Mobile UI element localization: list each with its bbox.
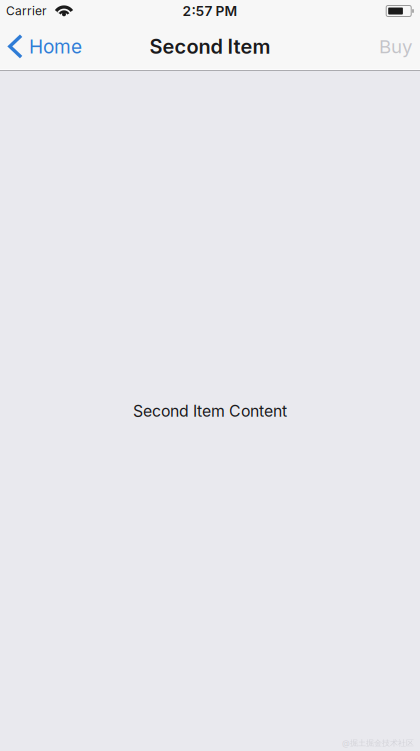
button[interactable]: Home [0,22,92,71]
staticText: Carrier [6,4,47,18]
button[interactable]: Buy [367,22,420,71]
staticText: Second Item [149,34,270,59]
staticText: 2:57 PM [182,3,237,19]
staticText: Buy [379,35,412,58]
staticText: Second Item Content [133,401,287,420]
staticText: Home [29,35,82,58]
staticText: @掘土掘金技术社区 [342,738,414,748]
